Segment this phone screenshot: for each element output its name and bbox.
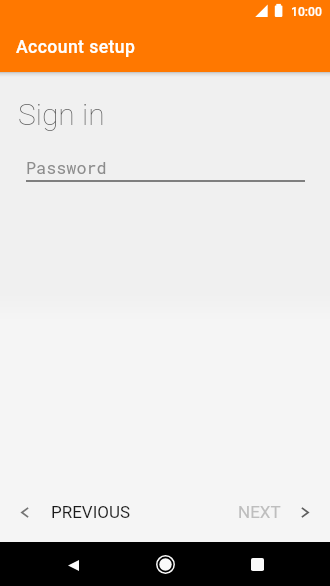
staticText: NEXT <box>238 502 281 522</box>
button[interactable]: Password <box>26 152 305 181</box>
staticText: 10:00 <box>291 5 322 19</box>
button[interactable]: NEXT <box>238 502 309 522</box>
staticText: PREVIOUS <box>51 502 131 522</box>
button[interactable]: Home <box>143 542 187 586</box>
button[interactable]: PREVIOUS <box>21 502 131 522</box>
staticText: Sign in <box>18 97 105 132</box>
button[interactable]: Recent apps <box>235 542 279 586</box>
button[interactable]: Back <box>51 543 95 586</box>
staticText: Password <box>26 156 107 178</box>
staticText: Account setup <box>16 37 136 58</box>
